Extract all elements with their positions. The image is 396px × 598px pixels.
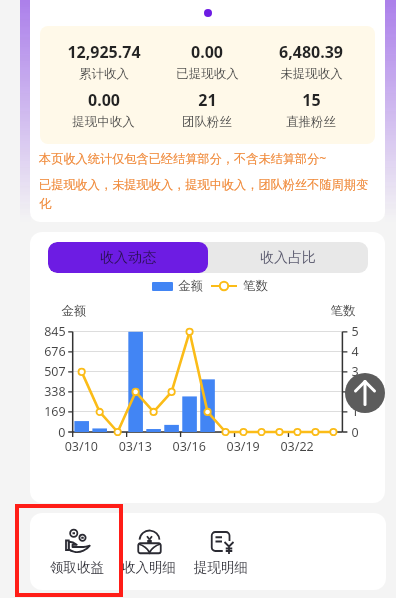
staticText: 0.00 [88, 89, 120, 111]
button[interactable]: Scroll to top [345, 373, 385, 413]
staticText: 直推粉丝 [286, 114, 336, 130]
staticText: 已提现收入，未提现收入，提现中收入，团队粉丝不随周期变化 [39, 177, 379, 212]
staticText: 金额 [178, 278, 203, 294]
button[interactable]: 收入动态 [48, 242, 208, 273]
staticText: 提现中收入 [72, 114, 135, 130]
staticText: 收入明细 [122, 559, 176, 576]
button[interactable]: 收入明细 [114, 513, 184, 590]
staticText: 笔数 [243, 278, 268, 294]
staticText: 收入动态 [100, 249, 156, 267]
staticText: 收入占比 [260, 249, 316, 267]
staticText: 6,480.39 [279, 41, 343, 63]
staticText: 提现明细 [194, 559, 248, 576]
staticText: 12,925.74 [67, 41, 141, 63]
staticText: 累计收入 [79, 66, 129, 82]
staticText: 0.00 [191, 41, 223, 63]
button[interactable]: 收入占比 [208, 242, 368, 273]
staticText: 团队粉丝 [182, 114, 232, 130]
staticText: 领取收益 [50, 559, 104, 576]
button[interactable]: 提现明细 [186, 513, 256, 590]
staticText: 15 [302, 89, 321, 111]
staticText: 21 [198, 89, 217, 111]
staticText: 未提现收入 [280, 66, 343, 82]
button[interactable]: 领取收益 [42, 513, 112, 590]
staticText: 本页收入统计仅包含已经结算部分，不含未结算部分~ [39, 150, 327, 167]
staticText: 已提现收入 [176, 66, 239, 82]
